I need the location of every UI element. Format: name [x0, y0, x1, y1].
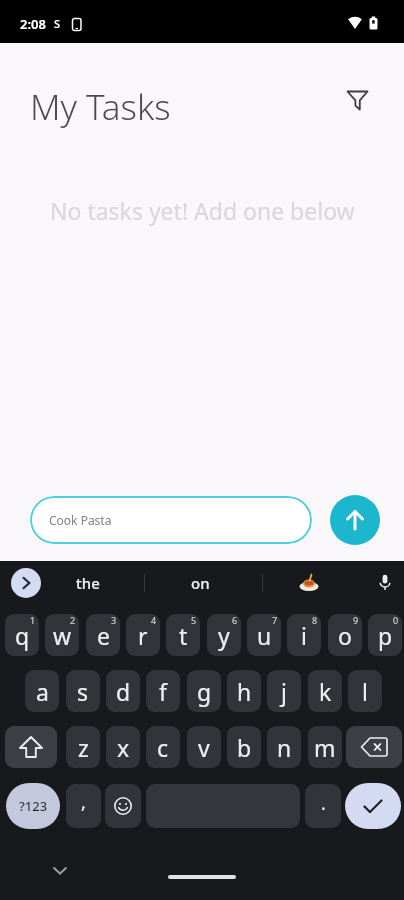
button[interactable]: q [5, 614, 39, 656]
button[interactable]: t [166, 614, 200, 656]
staticText: i [301, 620, 307, 651]
button[interactable] [11, 568, 41, 598]
staticText: h [237, 676, 252, 707]
button[interactable]: d [106, 670, 140, 712]
button[interactable]: c [146, 726, 180, 768]
staticText: z [78, 732, 89, 763]
staticText: l [362, 676, 368, 707]
button[interactable]: r [126, 614, 160, 656]
staticText: w [53, 620, 72, 651]
staticText: r [138, 620, 148, 651]
button[interactable]: l [348, 670, 382, 712]
staticText: 6 [232, 614, 238, 626]
staticText: 2:08 [20, 15, 46, 33]
staticText: f [159, 676, 167, 707]
staticText: m [314, 732, 336, 763]
button[interactable] [5, 726, 57, 768]
staticText: a [36, 676, 49, 707]
button[interactable]: u [247, 614, 281, 656]
button[interactable]: n [267, 726, 301, 768]
staticText: d [116, 676, 131, 707]
button[interactable]: . [305, 784, 341, 828]
staticText: t [179, 620, 188, 651]
button[interactable] [46, 857, 74, 885]
staticText: q [15, 620, 30, 651]
button[interactable]: y [207, 614, 241, 656]
button[interactable] [146, 784, 300, 828]
button[interactable]: x [106, 726, 140, 768]
button[interactable]: w [45, 614, 79, 656]
staticText: o [338, 620, 352, 651]
button[interactable]: g [187, 670, 221, 712]
staticText: Cook Pasta [49, 512, 112, 528]
button[interactable]: , [66, 784, 101, 828]
button[interactable] [346, 726, 402, 768]
button[interactable]: b [227, 726, 261, 768]
staticText: n [277, 732, 292, 763]
staticText: b [237, 732, 252, 763]
button[interactable]: e [86, 614, 120, 656]
staticText: e [97, 620, 110, 651]
staticText: My Tasks [30, 83, 171, 131]
button[interactable] [287, 561, 331, 605]
button[interactable]: j [267, 670, 301, 712]
staticText: 9 [353, 614, 359, 626]
staticText: on [191, 573, 210, 593]
staticText: j [281, 676, 287, 707]
staticText: p [378, 620, 393, 651]
button[interactable]: m [308, 726, 342, 768]
staticText: v [198, 732, 210, 763]
button[interactable]: f [146, 670, 180, 712]
staticText: u [257, 620, 272, 651]
button[interactable]: the [46, 563, 130, 603]
staticText: y [218, 620, 230, 651]
staticText: . [321, 791, 326, 816]
staticText: No tasks yet! Add one below [50, 195, 355, 226]
button[interactable]: h [227, 670, 261, 712]
button[interactable] [341, 84, 375, 118]
button[interactable]: ?123 [6, 783, 60, 829]
button[interactable] [105, 784, 141, 828]
staticText: the [76, 573, 100, 593]
staticText: 7 [272, 614, 278, 626]
staticText: 0 [393, 614, 399, 626]
button[interactable]: k [308, 670, 342, 712]
button[interactable] [345, 783, 401, 829]
button[interactable]: a [25, 670, 59, 712]
staticText: , [81, 790, 86, 815]
button[interactable]: p [368, 614, 402, 656]
staticText: 5 [191, 614, 197, 626]
button[interactable]: s [66, 670, 100, 712]
button[interactable]: on [158, 563, 242, 603]
staticText: 8 [312, 614, 318, 626]
button[interactable]: z [66, 726, 100, 768]
button[interactable]: o [328, 614, 362, 656]
staticText: ?123 [19, 797, 48, 815]
button[interactable] [363, 561, 404, 605]
staticText: 1 [30, 614, 36, 626]
staticText: 3 [111, 614, 117, 626]
staticText: 4 [151, 614, 157, 626]
staticText: 2 [70, 614, 76, 626]
button[interactable]: Cook Pasta [30, 496, 312, 544]
staticText: s [77, 676, 89, 707]
staticText: S [54, 16, 61, 31]
button[interactable]: i [287, 614, 321, 656]
staticText: x [117, 732, 130, 763]
staticText: g [197, 676, 212, 707]
staticText: k [319, 676, 332, 707]
button[interactable]: v [187, 726, 221, 768]
button[interactable] [330, 495, 380, 545]
staticText: c [157, 732, 169, 763]
